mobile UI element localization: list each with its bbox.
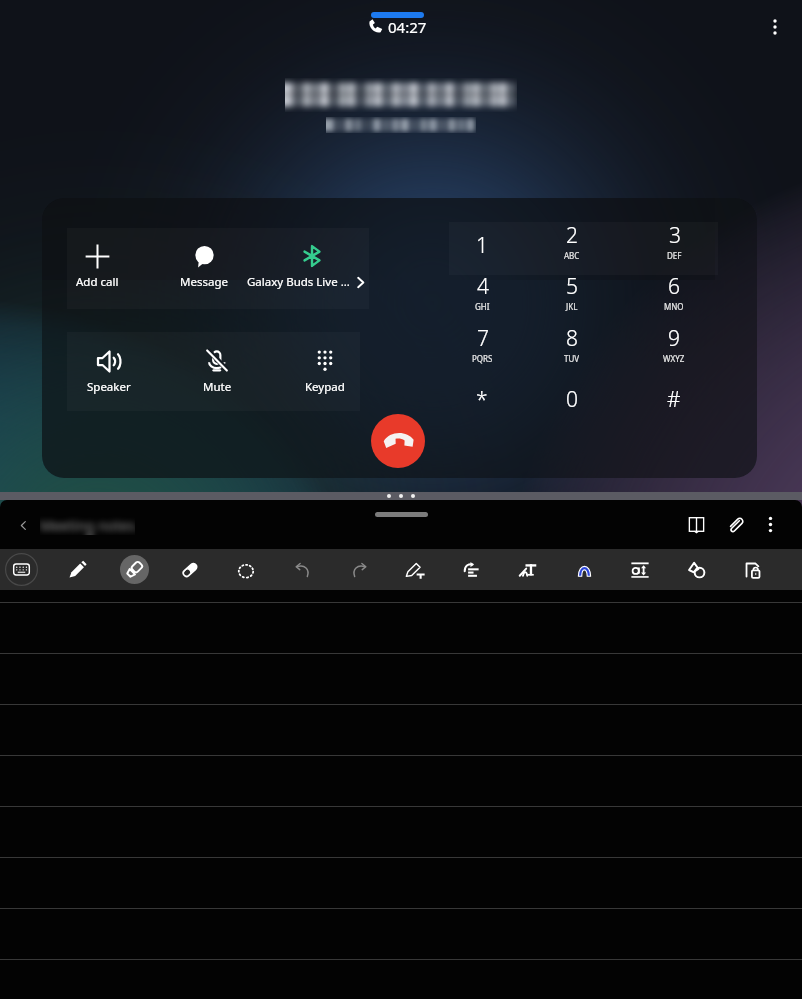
- button[interactable]: Redo: [338, 549, 380, 590]
- button[interactable]: [262, 232, 362, 302]
- button[interactable]: 5: [528, 271, 616, 321]
- staticText: 5: [566, 272, 578, 301]
- staticText: GHI: [475, 301, 490, 312]
- button[interactable]: [47, 232, 147, 302]
- button[interactable]: Shapes: [676, 549, 718, 590]
- button[interactable]: 7: [438, 323, 526, 373]
- staticText: 04:27: [388, 17, 427, 37]
- button[interactable]: Undo: [282, 549, 324, 590]
- button[interactable]: Eraser: [169, 549, 211, 590]
- button[interactable]: 9: [630, 323, 718, 373]
- staticText: ABC: [564, 250, 580, 261]
- button[interactable]: Attach file: [718, 507, 752, 541]
- button[interactable]: More options: [755, 7, 795, 47]
- staticText: MNO: [664, 301, 684, 312]
- button[interactable]: More options: [753, 507, 787, 541]
- staticText: Keypad: [305, 379, 345, 395]
- staticText: 2: [566, 221, 578, 250]
- button[interactable]: Pen settings: [394, 549, 436, 590]
- staticText: Speaker: [87, 379, 131, 395]
- staticText: 7: [477, 324, 489, 353]
- button[interactable]: Text style: [507, 549, 549, 590]
- staticText: Meeting notes: [40, 516, 135, 535]
- staticText: #: [667, 385, 681, 414]
- staticText: TUV: [564, 353, 580, 364]
- staticText: JKL: [566, 301, 578, 312]
- button[interactable]: #: [630, 374, 718, 424]
- button[interactable]: Text size: [619, 549, 661, 590]
- button[interactable]: Lasso select: [225, 549, 267, 590]
- button[interactable]: Highlighter: [113, 549, 155, 590]
- button[interactable]: Pen: [56, 549, 98, 590]
- button[interactable]: 1: [438, 220, 526, 270]
- button[interactable]: [59, 337, 159, 407]
- button[interactable]: 3: [630, 220, 718, 270]
- button[interactable]: AI assist: [563, 549, 605, 590]
- staticText: Mute: [203, 379, 232, 395]
- button[interactable]: Keyboard: [0, 549, 42, 590]
- button[interactable]: 8: [528, 323, 616, 373]
- staticText: 6: [668, 272, 680, 301]
- staticText: DEF: [667, 250, 682, 261]
- staticText: 9: [668, 324, 680, 353]
- staticText: 1: [476, 231, 488, 260]
- button[interactable]: 2: [528, 220, 616, 270]
- button[interactable]: Resize split screen: [0, 492, 802, 500]
- button[interactable]: [167, 337, 267, 407]
- staticText: 8: [566, 324, 578, 353]
- button[interactable]: [275, 336, 375, 406]
- staticText: WXYZ: [663, 353, 685, 364]
- staticText: 0: [566, 385, 578, 414]
- button[interactable]: 6: [630, 271, 718, 321]
- button[interactable]: [154, 232, 254, 302]
- button[interactable]: Back: [8, 510, 38, 540]
- button[interactable]: Reading view: [679, 507, 713, 541]
- button[interactable]: *: [438, 374, 526, 424]
- staticText: PQRS: [472, 353, 493, 364]
- button[interactable]: 0: [528, 374, 616, 424]
- button[interactable]: 4: [438, 271, 526, 321]
- staticText: 4: [477, 272, 489, 301]
- staticText: Add call: [76, 274, 119, 290]
- staticText: 3: [669, 221, 681, 250]
- button[interactable]: End call: [371, 414, 425, 468]
- staticText: Galaxy Buds Live ...: [247, 274, 350, 290]
- staticText: *: [476, 385, 488, 414]
- staticText: Message: [180, 274, 228, 290]
- button[interactable]: Convert to text: [450, 549, 492, 590]
- button[interactable]: Lock note: [732, 549, 774, 590]
